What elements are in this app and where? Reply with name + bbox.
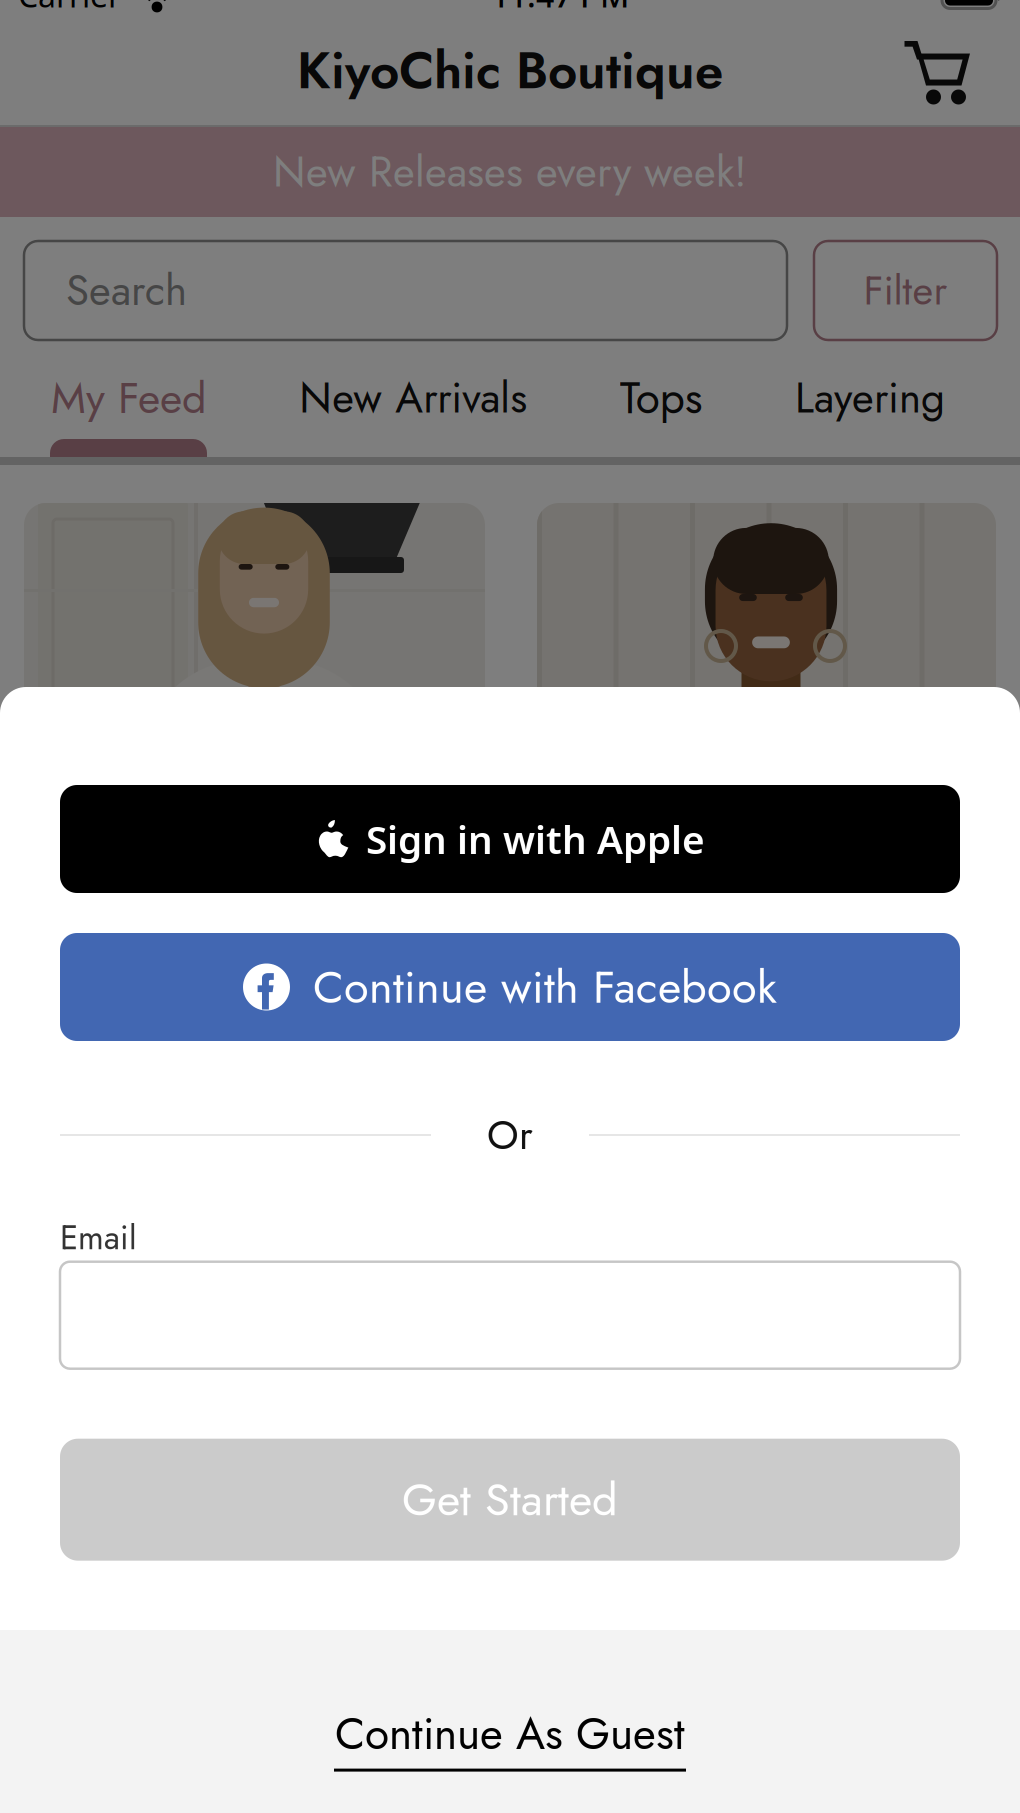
staticText: KiyoChic Boutique bbox=[297, 34, 723, 107]
button[interactable]: New Arrivals bbox=[299, 368, 527, 428]
button[interactable]: Cart bbox=[890, 40, 1020, 104]
button[interactable]: Featured look two bbox=[537, 503, 996, 943]
button[interactable]: My Feed bbox=[51, 367, 207, 429]
staticText: Search bbox=[66, 260, 187, 321]
staticText: Filter bbox=[863, 262, 947, 319]
staticText: Get Started bbox=[402, 1467, 618, 1532]
button[interactable]: Filter bbox=[814, 241, 997, 340]
staticText: Carrier bbox=[18, 0, 121, 16]
staticText: New Releases every week! bbox=[273, 142, 747, 202]
staticText: Continue As Guest bbox=[335, 1702, 685, 1766]
staticText: Sign in with Apple bbox=[366, 813, 705, 865]
button[interactable]: Layering bbox=[795, 368, 945, 428]
button[interactable]: Continue As Guest bbox=[0, 1630, 1020, 1813]
staticText: 11:47 PM bbox=[491, 0, 629, 16]
staticText: New Arrivals bbox=[299, 368, 527, 428]
button[interactable]: Get Started bbox=[60, 1439, 960, 1561]
staticText: Tops bbox=[620, 366, 703, 430]
staticText: My Feed bbox=[51, 367, 207, 429]
button[interactable]: Tops bbox=[620, 366, 703, 430]
staticText: Email bbox=[60, 1214, 137, 1262]
staticText: Layering bbox=[795, 368, 945, 428]
button[interactable]: Continue with Facebook bbox=[60, 933, 960, 1041]
button[interactable]: Featured look one bbox=[24, 503, 485, 943]
button[interactable]: Sign in with Apple bbox=[60, 785, 960, 893]
staticText: Continue with Facebook bbox=[313, 954, 777, 1019]
staticText: Or bbox=[487, 1106, 533, 1164]
